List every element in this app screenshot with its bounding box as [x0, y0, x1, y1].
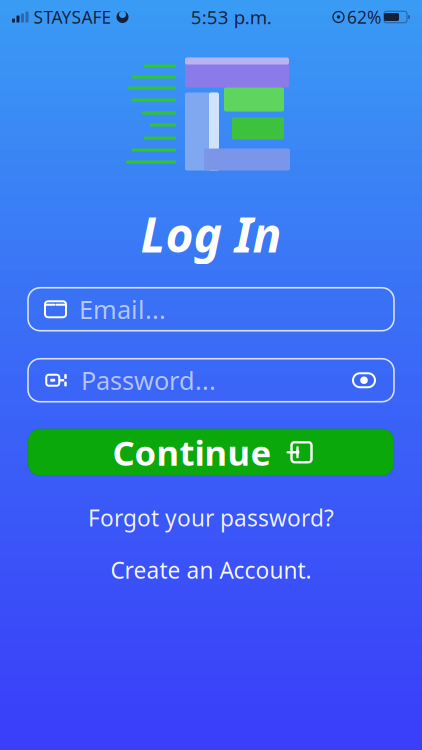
- staticText: Password...: [81, 363, 216, 397]
- button[interactable]: Continue: [28, 429, 394, 476]
- button[interactable]: Password...: [28, 359, 394, 402]
- staticText: STAYSAFE: [33, 5, 111, 28]
- button[interactable]: Create an Account.: [100, 550, 321, 590]
- staticText: Email...: [79, 292, 166, 326]
- staticText: 62%: [347, 5, 381, 28]
- staticText: Log In: [140, 202, 281, 266]
- staticText: Create an Account.: [110, 555, 311, 585]
- button[interactable]: Email...: [28, 288, 394, 331]
- button[interactable]: Forgot your password?: [78, 498, 344, 538]
- staticText: Continue: [112, 429, 271, 475]
- staticText: Forgot your password?: [88, 503, 334, 533]
- staticText: 5:53 p.m.: [191, 5, 272, 29]
